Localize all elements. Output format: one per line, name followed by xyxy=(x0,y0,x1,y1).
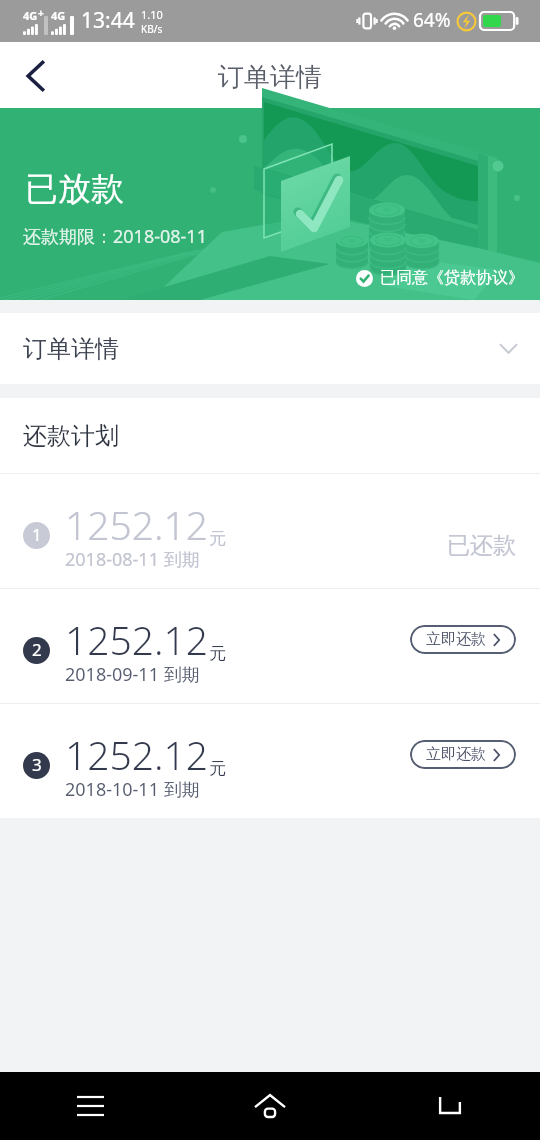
staticText: 立即还款 xyxy=(426,745,486,764)
staticText: 已还款 xyxy=(447,531,516,560)
staticText: KB/s xyxy=(141,22,163,36)
staticText: 元 xyxy=(209,643,226,664)
staticText: 元 xyxy=(209,758,226,779)
staticText: 已同意《贷款协议》 xyxy=(380,268,524,288)
staticText: 还款期限：2018-08-11 xyxy=(23,224,207,249)
button[interactable]: 已同意《贷款协议》 xyxy=(356,268,524,288)
staticText: 2 xyxy=(32,638,42,661)
staticText: 2018-10-11 到期 xyxy=(65,777,200,802)
staticText: 64% xyxy=(413,7,451,33)
staticText: 1252.12 xyxy=(65,613,209,666)
button[interactable]: 立即还款 xyxy=(410,740,516,769)
staticText: 订单详情 xyxy=(218,61,322,94)
staticText: 立即还款 xyxy=(426,630,486,649)
button[interactable]: Home xyxy=(180,1072,360,1140)
staticText: 订单详情 xyxy=(23,334,119,364)
button[interactable]: Back xyxy=(360,1072,540,1140)
button[interactable]: 立即还款 xyxy=(410,625,516,654)
button[interactable]: Back xyxy=(0,42,64,108)
staticText: 2018-08-11 到期 xyxy=(65,547,200,572)
button[interactable]: 订单详情 xyxy=(0,313,540,384)
staticText: 1252.12 xyxy=(65,728,209,781)
staticText: 元 xyxy=(209,528,226,549)
staticText: 已放款 xyxy=(25,168,124,210)
staticText: + xyxy=(38,6,44,20)
staticText: 1.10 xyxy=(141,7,163,22)
staticText: 13:44 xyxy=(81,6,135,35)
button[interactable]: Menu xyxy=(0,1072,180,1140)
staticText: 2018-09-11 到期 xyxy=(65,662,200,687)
staticText: 3 xyxy=(32,753,42,776)
staticText: 还款计划 xyxy=(23,421,119,451)
staticText: 1252.12 xyxy=(65,498,209,551)
staticText: 4G xyxy=(23,8,38,23)
staticText: 1 xyxy=(32,523,42,546)
staticText: 4G xyxy=(51,8,66,23)
